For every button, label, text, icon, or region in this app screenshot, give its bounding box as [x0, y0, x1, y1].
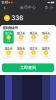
staticText: ⋯: [50, 6, 53, 9]
staticText: ⦁⦁⦁: [47, 1, 50, 4]
staticText: +5: [31, 55, 35, 58]
button[interactable]: 第4天: [41, 31, 51, 44]
button[interactable]: Back: [2, 4, 7, 10]
button[interactable]: 第2天: [16, 31, 26, 44]
staticText: +5: [19, 39, 23, 42]
button[interactable]: 第1天: [3, 31, 14, 44]
staticText: 第4天: [42, 31, 50, 35]
button[interactable]: 第7天: [28, 46, 39, 59]
staticText: ↻: [45, 6, 48, 9]
staticText: 第2天: [17, 31, 25, 35]
staticText: 金币中心: [20, 5, 36, 10]
staticText: +5: [6, 55, 10, 58]
staticText: +5: [31, 39, 35, 42]
staticText: 立即签到: [20, 65, 36, 70]
staticText: 第7天: [29, 47, 37, 51]
button[interactable]: More: [49, 5, 54, 10]
staticText: +5: [44, 55, 48, 58]
staticText: ‹: [3, 4, 5, 11]
button[interactable]: 第3天: [28, 31, 39, 44]
staticText: 第5天: [4, 47, 12, 51]
staticText: +5: [6, 39, 10, 42]
button[interactable]: Refresh: [44, 5, 49, 10]
staticText: +5: [19, 55, 23, 58]
button[interactable]: 第6天: [16, 46, 26, 59]
staticText: 第3天: [29, 31, 37, 35]
staticText: 第1天: [5, 31, 12, 35]
button[interactable]: 立即签到: [2, 63, 54, 72]
button[interactable]: 第5天: [3, 46, 14, 59]
button[interactable]: 第8天: [41, 46, 51, 59]
staticText: 签到领金币: [2, 26, 17, 30]
staticText: 第8天: [42, 47, 50, 51]
staticText: 第6天: [17, 47, 25, 51]
staticText: 9:41: [2, 1, 8, 4]
staticText: 336: [11, 14, 23, 22]
staticText: +5: [44, 39, 48, 42]
